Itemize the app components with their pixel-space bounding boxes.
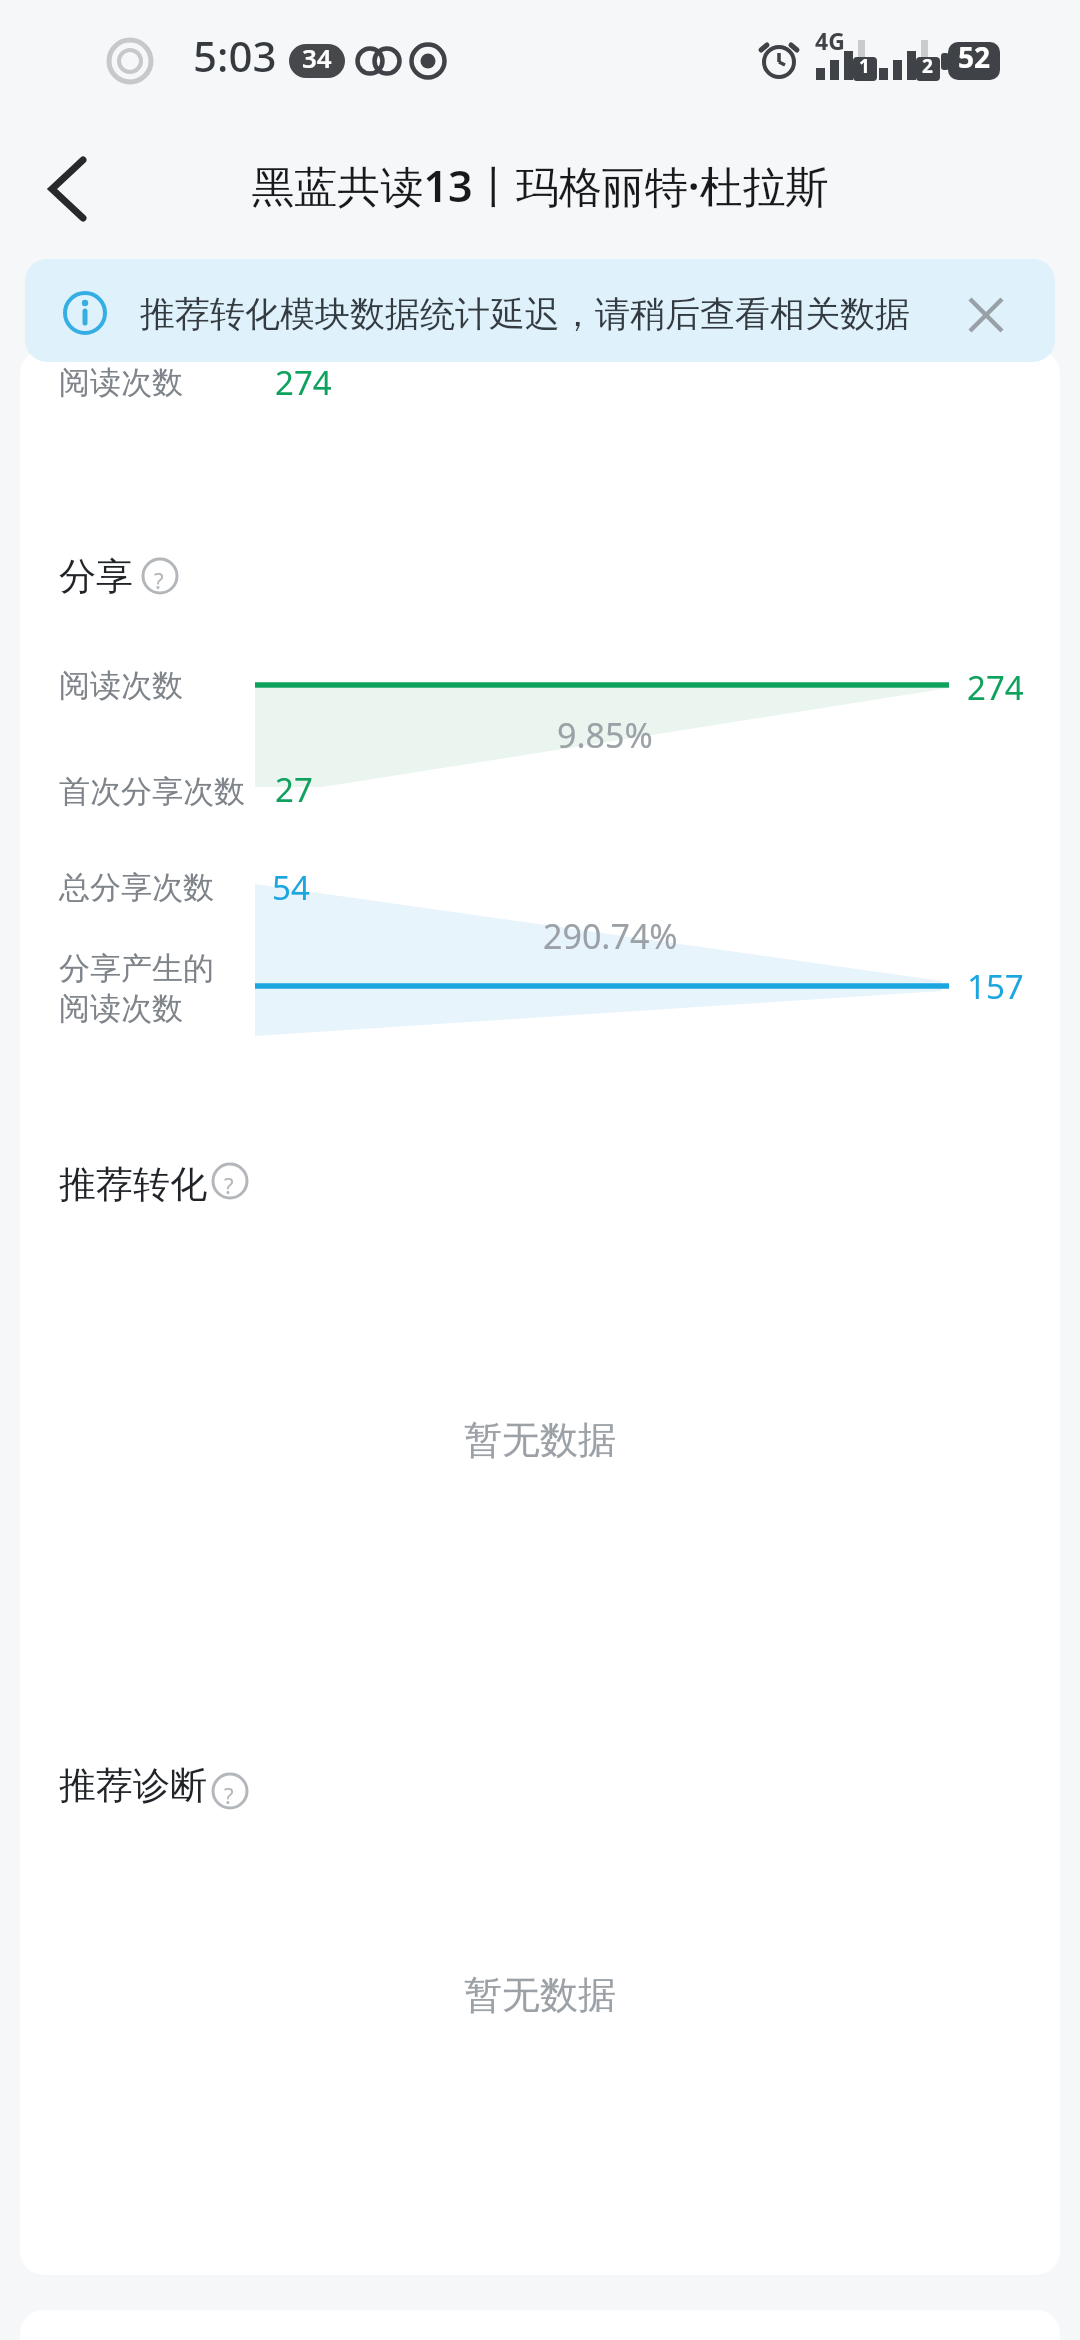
staticText: 分享 — [59, 553, 133, 600]
staticText: 274 — [275, 360, 332, 405]
staticText: 1 — [859, 53, 870, 79]
staticText: 52 — [958, 38, 991, 76]
staticText: 暂无数据 — [0, 1416, 1080, 1464]
staticText: 推荐诊断 — [59, 1762, 207, 1809]
staticText: 157 — [967, 964, 1024, 1009]
staticText: 阅读次数 — [59, 989, 183, 1028]
staticText: 首次分享次数 — [59, 772, 245, 811]
staticText: 黑蓝共读13丨玛格丽特·杜拉斯 — [0, 156, 1080, 215]
staticText: 4G — [815, 25, 845, 56]
staticText: 推荐转化 — [59, 1161, 207, 1208]
staticText: 274 — [967, 665, 1024, 710]
button[interactable] — [955, 287, 1017, 345]
staticText: 暂无数据 — [0, 1971, 1080, 2019]
staticText: ? — [224, 1780, 234, 1810]
staticText: 290.74% — [543, 913, 678, 959]
button[interactable] — [138, 554, 182, 598]
staticText: 34 — [302, 40, 332, 75]
staticText: 9.85% — [557, 712, 653, 758]
button[interactable] — [36, 148, 100, 232]
staticText: ? — [154, 565, 164, 595]
staticText: 2 — [922, 53, 933, 79]
staticText: 5:03 — [193, 27, 277, 84]
staticText: 27 — [275, 767, 313, 812]
staticText: 推荐转化模块数据统计延迟，请稍后查看相关数据 — [140, 292, 910, 336]
staticText: 阅读次数 — [59, 666, 183, 705]
button[interactable] — [25, 259, 1055, 362]
button[interactable] — [208, 1159, 252, 1203]
staticText: 分享产生的 — [59, 949, 214, 988]
staticText: ? — [224, 1170, 234, 1200]
staticText: 54 — [272, 865, 310, 910]
button[interactable] — [208, 1769, 252, 1813]
staticText: 总分享次数 — [59, 868, 214, 907]
staticText: 阅读次数 — [59, 363, 183, 402]
